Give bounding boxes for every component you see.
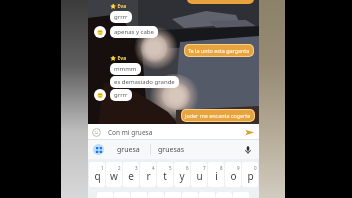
staticText: 7 [203, 165, 206, 171]
staticText: 0 [254, 165, 257, 171]
button[interactable]: gruesas [158, 145, 185, 155]
button[interactable]: e [123, 162, 139, 187]
staticText: w [110, 169, 118, 183]
button[interactable]: mmmm [110, 63, 141, 75]
button[interactable]: apenas y cabe [110, 26, 158, 38]
button[interactable]: Voice input [243, 145, 253, 155]
staticText: gruesas [158, 145, 185, 155]
button[interactable]: Te la unto esta garganta [184, 44, 254, 57]
staticText: Con mi gruesa [108, 128, 153, 137]
staticText: t [163, 169, 167, 183]
staticText: e [128, 169, 134, 183]
button[interactable]: r [140, 162, 156, 187]
staticText: Joder me encanta cogerte [185, 112, 251, 119]
staticText: u [196, 169, 203, 183]
staticText: 9 [237, 165, 240, 171]
staticText: i [215, 169, 218, 183]
staticText: y [179, 169, 185, 183]
button[interactable]: q [89, 162, 105, 187]
staticText: 3 [135, 165, 138, 171]
button[interactable]: u [191, 162, 207, 187]
button[interactable]: Joder me encanta cogerte [181, 109, 255, 122]
staticText: r [146, 169, 151, 183]
staticText: Te la unto esta garganta [188, 47, 250, 54]
button[interactable]: grrrr [110, 89, 132, 101]
staticText: o [230, 169, 237, 183]
button[interactable]: o [225, 162, 241, 187]
staticText: 6 [186, 165, 189, 171]
button[interactable]: y [174, 162, 190, 187]
button[interactable]: Send [244, 127, 255, 138]
staticText: es demasiado grande [114, 78, 175, 86]
staticText: 4 [152, 165, 155, 171]
staticText: apenas y cabe [114, 28, 154, 36]
button[interactable]: t [157, 162, 173, 187]
staticText: 8 [220, 165, 223, 171]
staticText: 1 [101, 165, 104, 171]
button[interactable]: p [242, 162, 258, 187]
staticText: grrrr [114, 91, 128, 99]
staticText: q [94, 169, 101, 183]
staticText: 5 [169, 165, 172, 171]
staticText: 🙂 [97, 29, 104, 35]
staticText: 🙂 [97, 92, 104, 98]
staticText: grrrr [114, 13, 128, 21]
staticText: ⭐ Eva [110, 55, 127, 62]
button[interactable]: i [208, 162, 224, 187]
staticText: p [247, 169, 254, 183]
staticText: ⭐ Eva [110, 3, 127, 10]
staticText: gruesa [117, 145, 140, 155]
button[interactable]: Keyboard toolbar [93, 144, 104, 155]
staticText: mmmm [114, 65, 137, 73]
button[interactable]: Emoji [92, 128, 101, 137]
button[interactable]: gruesa [117, 145, 140, 155]
button[interactable]: w [106, 162, 122, 187]
button[interactable]: es demasiado grande [110, 76, 179, 88]
staticText: 2 [118, 165, 121, 171]
button[interactable]: grrrr [110, 11, 132, 23]
